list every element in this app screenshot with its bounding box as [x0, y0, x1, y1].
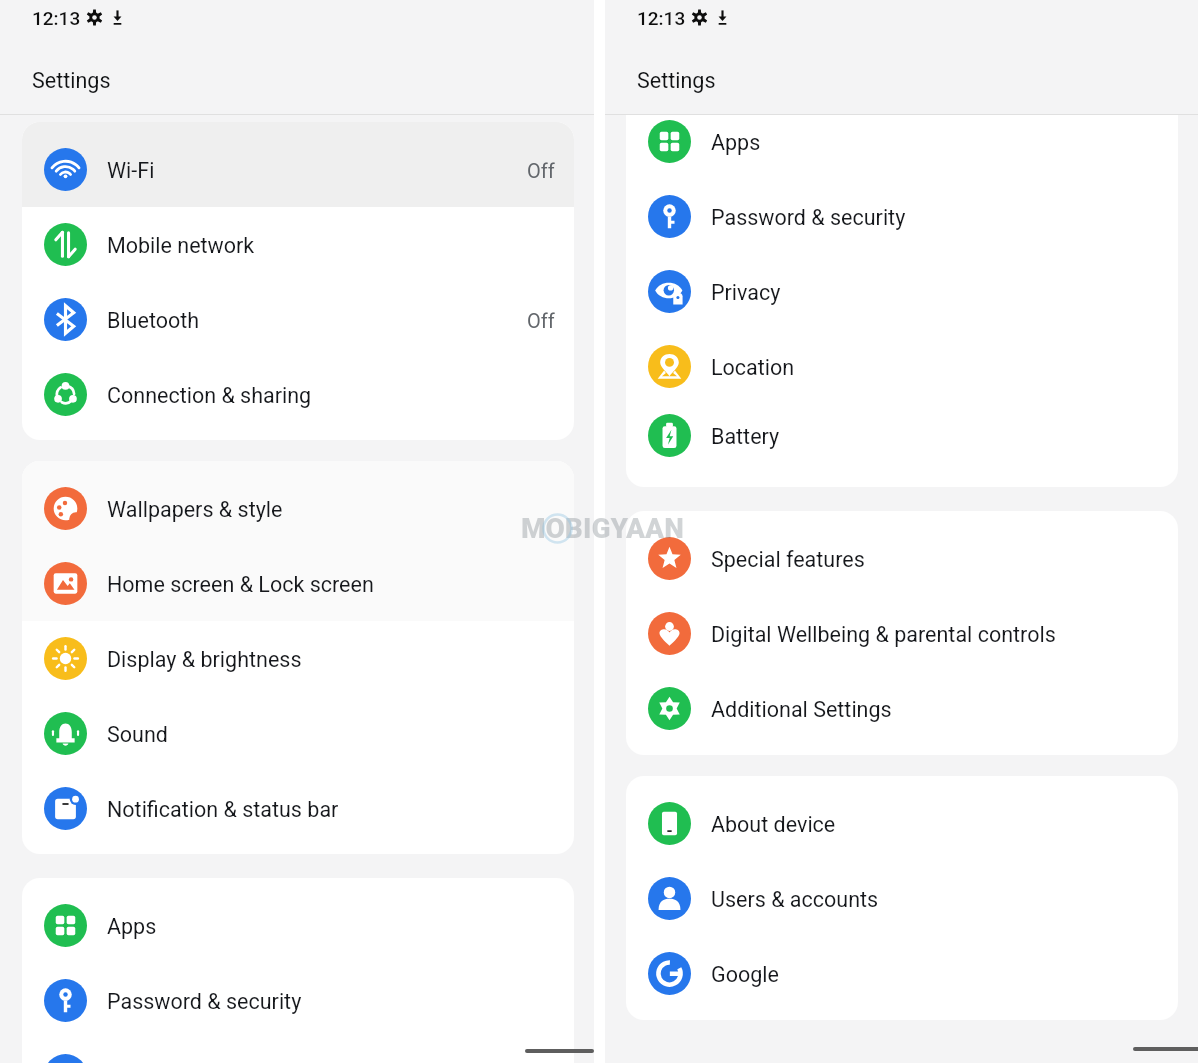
- button[interactable]: Battery: [626, 404, 1178, 466]
- staticText: Special features: [711, 547, 865, 572]
- staticText: Password & security: [711, 205, 906, 230]
- staticText: Display & brightness: [107, 647, 302, 672]
- button[interactable]: Additional Settings: [626, 671, 1178, 746]
- button[interactable]: Location: [626, 329, 1178, 404]
- staticText: Off: [527, 159, 555, 182]
- staticText: MOBIGYAAN: [521, 512, 684, 545]
- staticText: Users & accounts: [711, 887, 879, 912]
- button[interactable]: Bluetooth: [22, 282, 574, 357]
- staticText: Settings: [32, 68, 111, 93]
- other: Download status icon: [714, 9, 731, 26]
- staticText: Bluetooth: [107, 308, 200, 333]
- staticText: 12:13: [32, 7, 81, 29]
- button[interactable]: Users & accounts: [626, 861, 1178, 936]
- button[interactable]: Home screen & Lock screen: [22, 546, 574, 621]
- other: Download status icon: [109, 9, 126, 26]
- staticText: Notification & status bar: [107, 797, 339, 822]
- other: Settings status icon: [86, 9, 103, 26]
- staticText: Settings: [637, 68, 716, 93]
- staticText: Privacy: [711, 280, 781, 305]
- staticText: 12:13: [637, 7, 686, 29]
- staticText: Additional Settings: [711, 697, 892, 722]
- button[interactable]: Password & security: [626, 179, 1178, 254]
- button[interactable]: Apps: [626, 115, 1178, 179]
- button[interactable]: Mobile network: [22, 207, 574, 282]
- staticText: Battery: [711, 424, 780, 449]
- staticText: Home screen & Lock screen: [107, 572, 374, 597]
- staticText: Digital Wellbeing & parental controls: [711, 622, 1056, 647]
- button[interactable]: About device: [626, 786, 1178, 861]
- button[interactable]: Password & security: [22, 963, 574, 1038]
- staticText: Connection & sharing: [107, 383, 312, 408]
- button[interactable]: Connection & sharing: [22, 357, 574, 432]
- button[interactable]: Wi-Fi: [22, 132, 574, 207]
- other: Settings status icon: [691, 9, 708, 26]
- staticText: Location: [711, 355, 795, 380]
- button[interactable]: Notification & status bar: [22, 771, 574, 846]
- button[interactable]: Google: [626, 936, 1178, 1011]
- staticText: About device: [711, 812, 836, 837]
- button[interactable]: Wallpapers & style: [22, 471, 574, 546]
- button[interactable]: Special features: [626, 521, 1178, 596]
- staticText: Wallpapers & style: [107, 497, 283, 522]
- staticText: Google: [711, 962, 779, 987]
- button[interactable]: Digital Wellbeing & parental controls: [626, 596, 1178, 671]
- staticText: Sound: [107, 722, 168, 747]
- staticText: Password & security: [107, 989, 302, 1014]
- staticText: Off: [527, 309, 555, 332]
- staticText: Apps: [107, 914, 157, 939]
- button[interactable]: Privacy: [626, 254, 1178, 329]
- staticText: Wi-Fi: [107, 158, 155, 183]
- button[interactable]: Apps: [22, 888, 574, 963]
- staticText: Apps: [711, 130, 761, 155]
- button[interactable]: Sound: [22, 696, 574, 771]
- button[interactable]: Privacy: [22, 1038, 574, 1063]
- staticText: Mobile network: [107, 233, 255, 258]
- button[interactable]: Display & brightness: [22, 621, 574, 696]
